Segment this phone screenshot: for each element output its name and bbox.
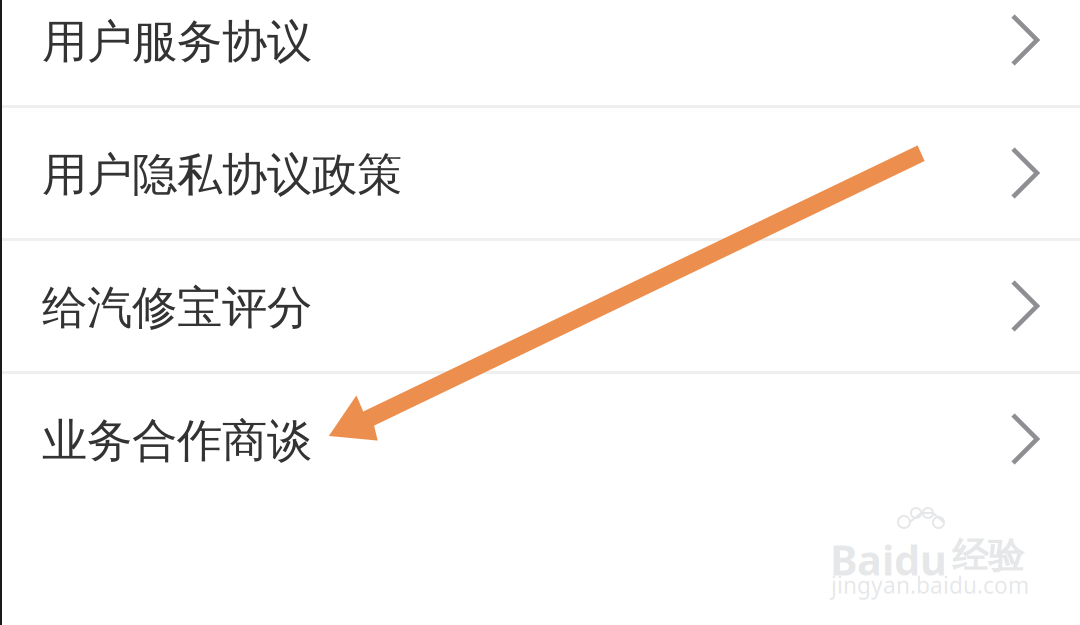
staticText: 用户服务协议 xyxy=(42,14,312,70)
staticText: 经验 xyxy=(952,534,1024,578)
staticText: 业务合作商谈 xyxy=(42,413,312,469)
button[interactable]: 业务合作商谈 xyxy=(0,374,1080,504)
staticText: Baidu xyxy=(830,532,947,587)
staticText: jingyan.baidu.com xyxy=(831,570,1029,600)
staticText: 用户隐私协议政策 xyxy=(42,147,402,203)
button[interactable]: 用户隐私协议政策 xyxy=(0,108,1080,238)
button[interactable]: 用户服务协议 xyxy=(0,0,1080,105)
button[interactable]: 给汽修宝评分 xyxy=(0,241,1080,371)
staticText: 给汽修宝评分 xyxy=(42,280,312,336)
